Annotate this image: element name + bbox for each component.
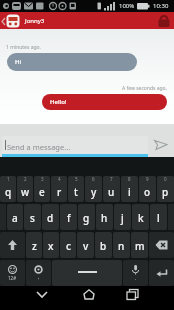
staticText: t xyxy=(74,185,78,199)
button[interactable]: l xyxy=(150,204,167,230)
staticText: 8 xyxy=(128,176,131,182)
button[interactable]: a xyxy=(7,204,23,230)
button[interactable] xyxy=(52,260,122,286)
button[interactable]: k xyxy=(132,204,149,230)
button[interactable]: 12# xyxy=(0,260,25,286)
button[interactable]: 5 xyxy=(68,176,84,202)
button[interactable]: m xyxy=(131,232,148,258)
staticText: 12# xyxy=(8,275,17,281)
staticText: Jonny3 xyxy=(25,17,45,25)
button[interactable]: s xyxy=(24,204,41,230)
button[interactable]: 8 xyxy=(121,176,138,202)
button[interactable]: n xyxy=(113,232,130,258)
staticText: 2 xyxy=(24,176,27,182)
button[interactable]: f xyxy=(60,204,77,230)
staticText: e xyxy=(39,185,45,199)
button[interactable]: b xyxy=(95,232,112,258)
button[interactable]: Jonny3 xyxy=(0,12,174,29)
button[interactable]: 2 xyxy=(17,176,33,202)
button[interactable]: v xyxy=(77,232,94,258)
staticText: . xyxy=(135,275,137,282)
button[interactable] xyxy=(149,232,174,258)
button[interactable] xyxy=(126,289,139,300)
staticText: d xyxy=(47,211,54,225)
staticText: 100% xyxy=(119,2,135,10)
button[interactable]: Send a message... xyxy=(2,136,148,157)
button[interactable]: z xyxy=(26,232,42,258)
staticText: f xyxy=(67,211,71,225)
button[interactable] xyxy=(36,291,48,299)
staticText: 0 xyxy=(164,176,167,182)
staticText: Send a message... xyxy=(7,142,71,152)
button[interactable]: g xyxy=(78,204,95,230)
staticText: b xyxy=(100,239,107,253)
button[interactable]: , xyxy=(26,260,51,286)
staticText: 10:30 xyxy=(153,2,169,10)
staticText: 6 xyxy=(92,176,95,182)
staticText: 5 xyxy=(75,176,78,182)
staticText: x xyxy=(48,239,54,253)
button[interactable] xyxy=(154,139,168,150)
staticText: g xyxy=(83,211,90,225)
staticText: r xyxy=(57,185,62,199)
button[interactable] xyxy=(83,289,95,300)
staticText: Hi xyxy=(15,58,22,66)
staticText: s xyxy=(30,211,35,225)
button[interactable]: j xyxy=(114,204,131,230)
staticText: q xyxy=(5,185,12,199)
staticText: u xyxy=(108,185,115,199)
staticText: o xyxy=(144,185,151,199)
button[interactable]: . xyxy=(123,260,148,286)
button[interactable]: 7 xyxy=(103,176,120,202)
button[interactable]: x xyxy=(43,232,59,258)
button[interactable]: 6 xyxy=(85,176,102,202)
staticText: 1 minutes ago. xyxy=(6,44,41,51)
button[interactable]: 3 xyxy=(34,176,50,202)
staticText: j xyxy=(121,211,124,225)
staticText: k xyxy=(138,211,144,225)
staticText: , xyxy=(38,274,40,281)
staticText: m xyxy=(135,239,145,253)
staticText: 1 xyxy=(7,176,10,182)
button[interactable]: 0 xyxy=(157,176,174,202)
staticText: a xyxy=(12,211,18,225)
staticText: h xyxy=(101,211,108,225)
staticText: n xyxy=(118,239,125,253)
staticText: z xyxy=(32,239,37,253)
staticText: l xyxy=(157,211,160,225)
staticText: p xyxy=(162,185,169,199)
staticText: c xyxy=(66,239,71,253)
staticText: y xyxy=(91,185,97,199)
button[interactable] xyxy=(157,15,172,27)
button[interactable]: h xyxy=(96,204,113,230)
button[interactable]: Hello! xyxy=(42,94,167,110)
button[interactable]: c xyxy=(60,232,76,258)
staticText: 7 xyxy=(110,176,113,182)
staticText: 9 xyxy=(146,176,149,182)
button[interactable] xyxy=(149,260,174,286)
button[interactable]: Hi xyxy=(7,53,137,71)
staticText: 4 xyxy=(58,176,61,182)
staticText: v xyxy=(83,239,89,253)
button[interactable]: 9 xyxy=(139,176,156,202)
button[interactable]: 1 xyxy=(0,176,16,202)
staticText: A few seconds ago. xyxy=(122,85,167,92)
button[interactable]: d xyxy=(42,204,59,230)
staticText: w xyxy=(21,185,30,199)
staticText: 3 xyxy=(41,176,44,182)
staticText: Hello! xyxy=(50,98,67,106)
button[interactable] xyxy=(0,232,25,258)
button[interactable]: 4 xyxy=(51,176,67,202)
staticText: i xyxy=(128,185,131,199)
